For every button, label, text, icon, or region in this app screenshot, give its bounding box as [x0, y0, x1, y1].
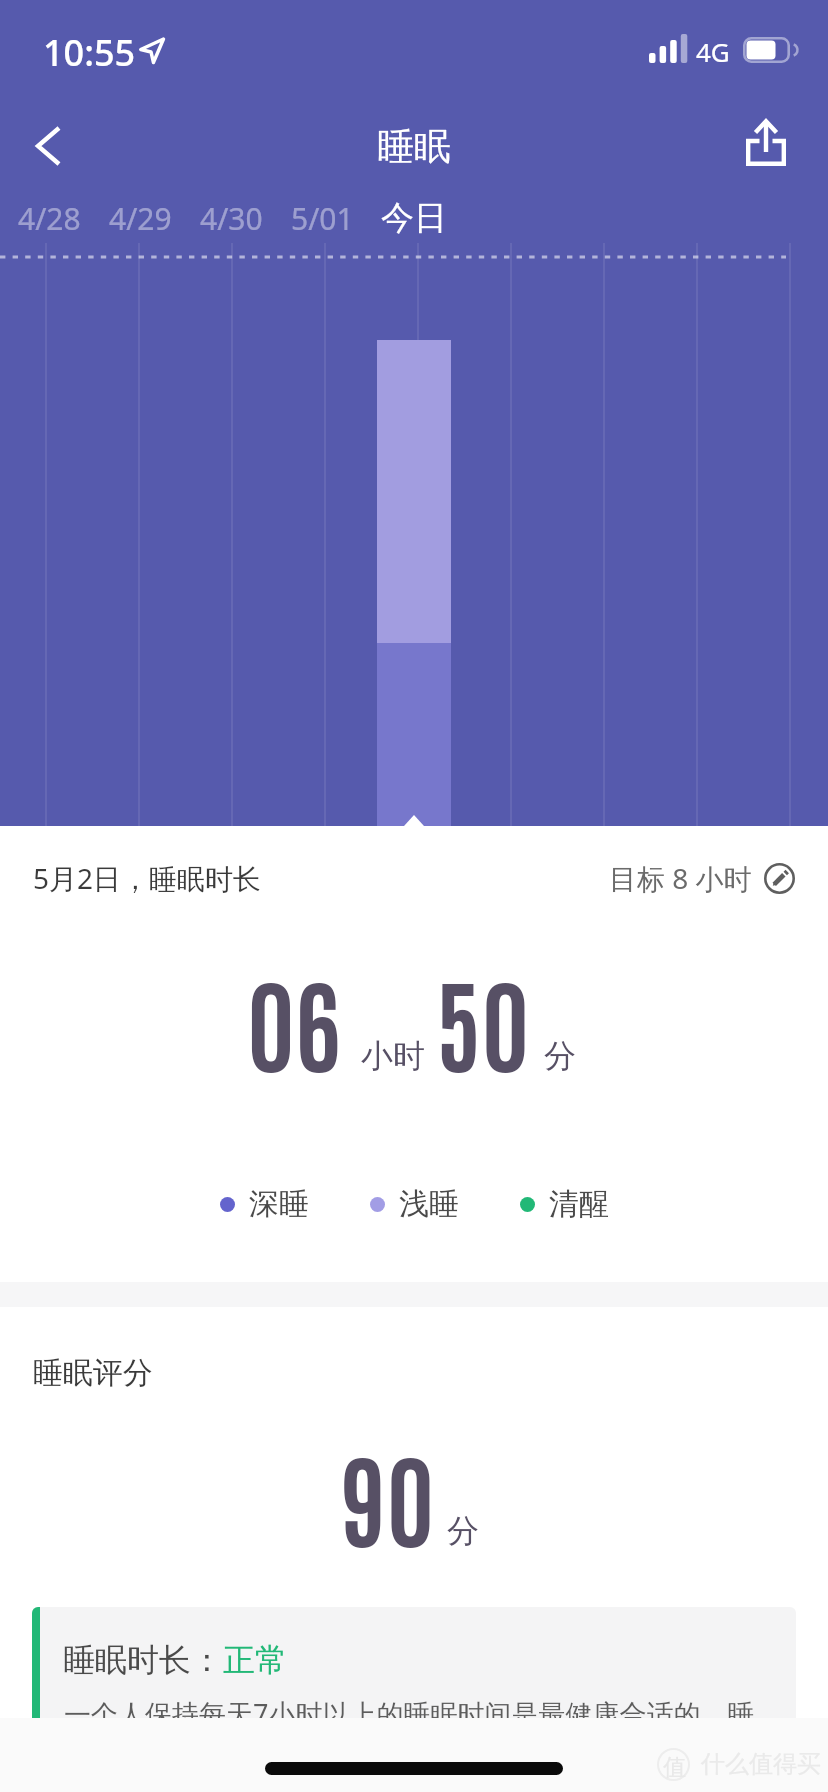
- button[interactable]: 目标 8 小时: [609, 859, 795, 897]
- staticText: 睡眠时长：: [63, 1640, 223, 1680]
- staticText: 小时: [361, 1036, 425, 1076]
- staticText: 06: [247, 954, 341, 1086]
- staticText: 深睡: [249, 1185, 309, 1223]
- staticText: 4/30: [200, 198, 263, 239]
- staticText: 今日: [381, 197, 447, 239]
- button[interactable]: 4/29: [95, 190, 186, 246]
- staticText: 什么值得买: [701, 1749, 821, 1779]
- staticText: 浅睡: [399, 1185, 459, 1223]
- staticText: 清醒: [549, 1185, 609, 1223]
- button[interactable]: 今日: [368, 190, 459, 246]
- button[interactable]: Share: [732, 110, 800, 178]
- staticText: 分: [447, 1511, 479, 1551]
- staticText: 正常: [223, 1640, 287, 1680]
- staticText: 10:55: [43, 28, 136, 77]
- staticText: 一个人保持每天7小时以上的睡眠时间是最健康合适的。睡: [64, 1695, 755, 1732]
- staticText: 90: [341, 1429, 435, 1561]
- button[interactable]: 清醒: [520, 1185, 609, 1223]
- button[interactable]: 4/28: [4, 190, 95, 246]
- staticText: 4/28: [18, 198, 81, 239]
- button[interactable]: 睡眠时长：: [32, 1607, 796, 1747]
- staticText: 4G: [696, 34, 730, 69]
- staticText: 值: [663, 1753, 686, 1782]
- staticText: 5/01: [291, 198, 354, 239]
- staticText: 4/29: [109, 198, 172, 239]
- staticText: 50: [436, 954, 530, 1086]
- staticText: 5月2日，睡眠时长: [33, 859, 262, 897]
- staticText: 目标 8 小时: [609, 859, 752, 897]
- staticText: 睡眠: [377, 123, 451, 170]
- staticText: 分: [544, 1036, 576, 1076]
- button[interactable]: 4/30: [186, 190, 277, 246]
- button[interactable]: 深睡: [220, 1185, 309, 1223]
- staticText: 睡眠评分: [33, 1354, 153, 1392]
- button[interactable]: Back: [14, 112, 82, 180]
- button[interactable]: 浅睡: [370, 1185, 459, 1223]
- button[interactable]: 5/01: [277, 190, 368, 246]
